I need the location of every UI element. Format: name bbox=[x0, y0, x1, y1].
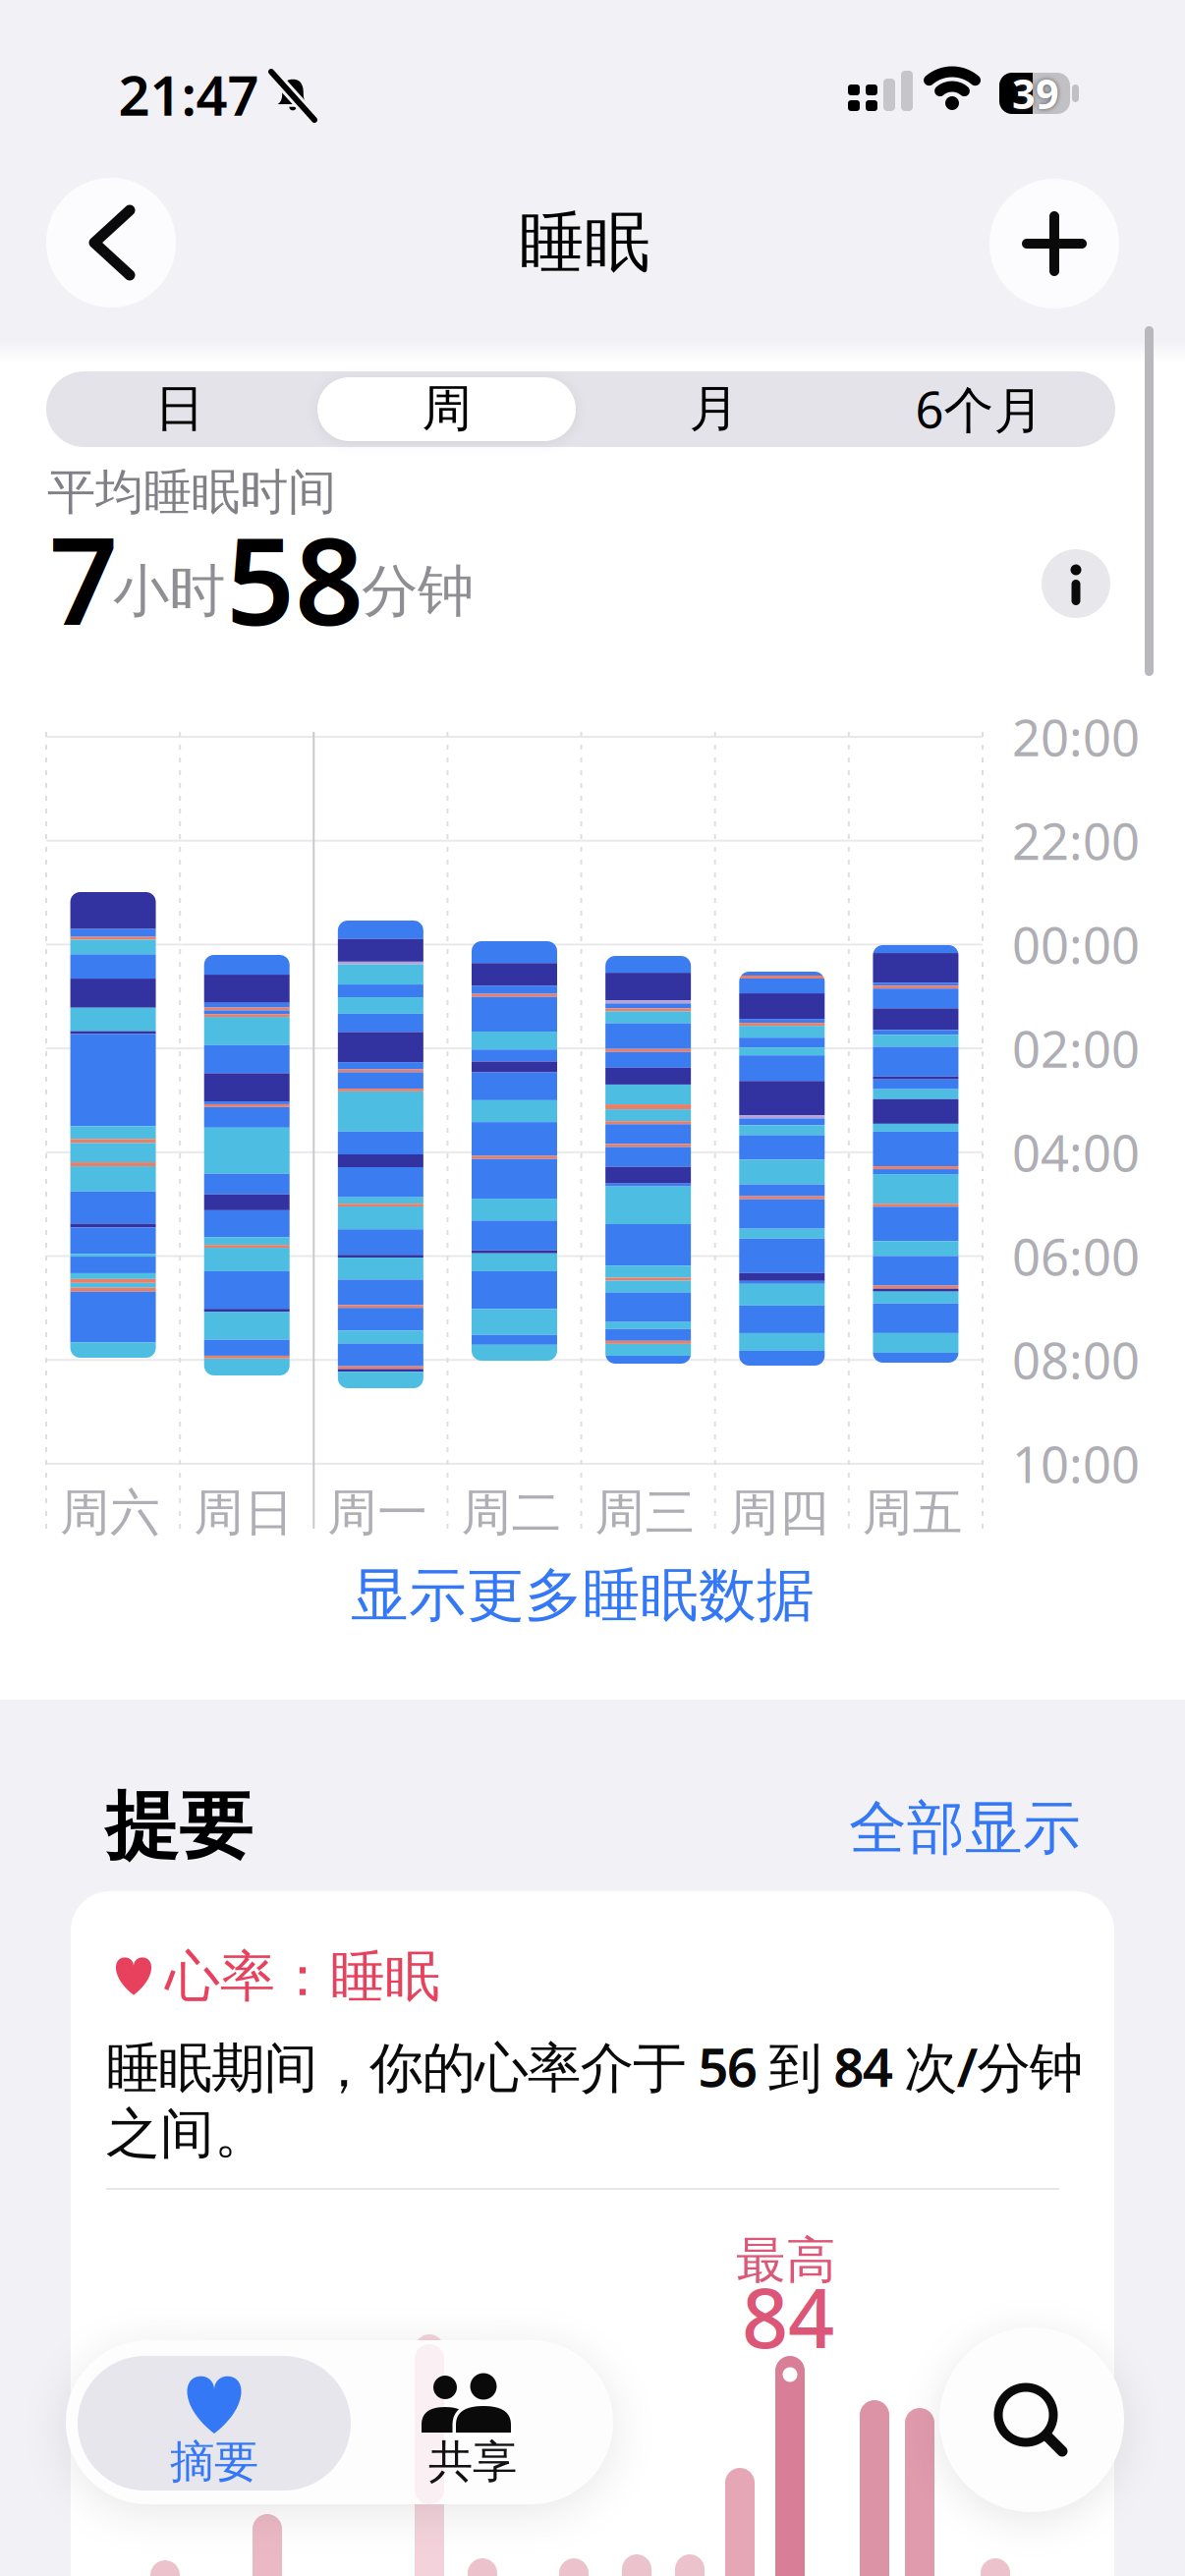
staticText: 摘要 bbox=[170, 2435, 258, 2489]
staticText: 04:00 bbox=[1012, 1119, 1140, 1185]
button[interactable]: 信息 bbox=[1042, 549, 1110, 618]
staticText: 22:00 bbox=[1012, 808, 1140, 874]
staticText: 睡眠期间，你的心率介于 56 到 84 次/分钟 bbox=[106, 2030, 1084, 2102]
staticText: 日 bbox=[155, 378, 205, 439]
button[interactable]: 月 bbox=[581, 371, 848, 447]
button[interactable]: 日 bbox=[46, 371, 313, 447]
staticText: 平均睡眠时间 bbox=[47, 462, 336, 522]
staticText: 39 bbox=[1012, 66, 1059, 120]
button[interactable]: 搜索 bbox=[939, 2327, 1124, 2512]
staticText: 月 bbox=[689, 378, 739, 439]
button[interactable]: 显示更多睡眠数据 bbox=[351, 1560, 815, 1631]
staticText: 之间。 bbox=[106, 2101, 268, 2167]
button[interactable]: 摘要 bbox=[78, 2356, 351, 2491]
staticText: 共享 bbox=[428, 2435, 517, 2489]
staticText: 显示更多睡眠数据 bbox=[351, 1560, 815, 1631]
staticText: 02:00 bbox=[1012, 1015, 1140, 1081]
button[interactable]: 周 bbox=[318, 377, 576, 441]
button[interactable]: 共享 bbox=[360, 2356, 576, 2491]
staticText: 20:00 bbox=[1012, 704, 1140, 770]
staticText: 周一 bbox=[327, 1482, 428, 1544]
staticText: 7 bbox=[49, 499, 118, 659]
staticText: 心率：睡眠 bbox=[165, 1943, 440, 2010]
staticText: 最高 bbox=[736, 2230, 836, 2291]
staticText: 周六 bbox=[60, 1482, 160, 1544]
button[interactable]: 心率：睡眠 bbox=[71, 1891, 1114, 2576]
staticText: 周四 bbox=[729, 1482, 829, 1544]
staticText: 周二 bbox=[461, 1482, 561, 1544]
staticText: 周五 bbox=[863, 1482, 963, 1544]
button[interactable]: 返回 bbox=[46, 178, 176, 308]
staticText: 00:00 bbox=[1012, 912, 1140, 978]
staticText: 84 bbox=[742, 2263, 834, 2371]
button[interactable]: 全部显示 bbox=[849, 1793, 1081, 1864]
staticText: 睡眠 bbox=[519, 202, 650, 283]
button[interactable]: 6个月 bbox=[846, 371, 1113, 447]
staticText: 小时 bbox=[113, 557, 225, 626]
staticText: 周 bbox=[422, 378, 472, 439]
staticText: 06:00 bbox=[1012, 1223, 1140, 1289]
staticText: 10:00 bbox=[1012, 1431, 1140, 1497]
staticText: 6个月 bbox=[915, 376, 1044, 442]
staticText: 周日 bbox=[194, 1482, 294, 1544]
staticText: 分钟 bbox=[362, 557, 474, 626]
staticText: 08:00 bbox=[1012, 1327, 1140, 1393]
staticText: 全部显示 bbox=[849, 1793, 1081, 1864]
button[interactable]: 添加 bbox=[989, 179, 1119, 308]
staticText: 周三 bbox=[595, 1482, 695, 1544]
staticText: 提要 bbox=[105, 1781, 253, 1871]
staticText: 21:47 bbox=[118, 58, 259, 131]
staticText: 58 bbox=[226, 499, 364, 659]
